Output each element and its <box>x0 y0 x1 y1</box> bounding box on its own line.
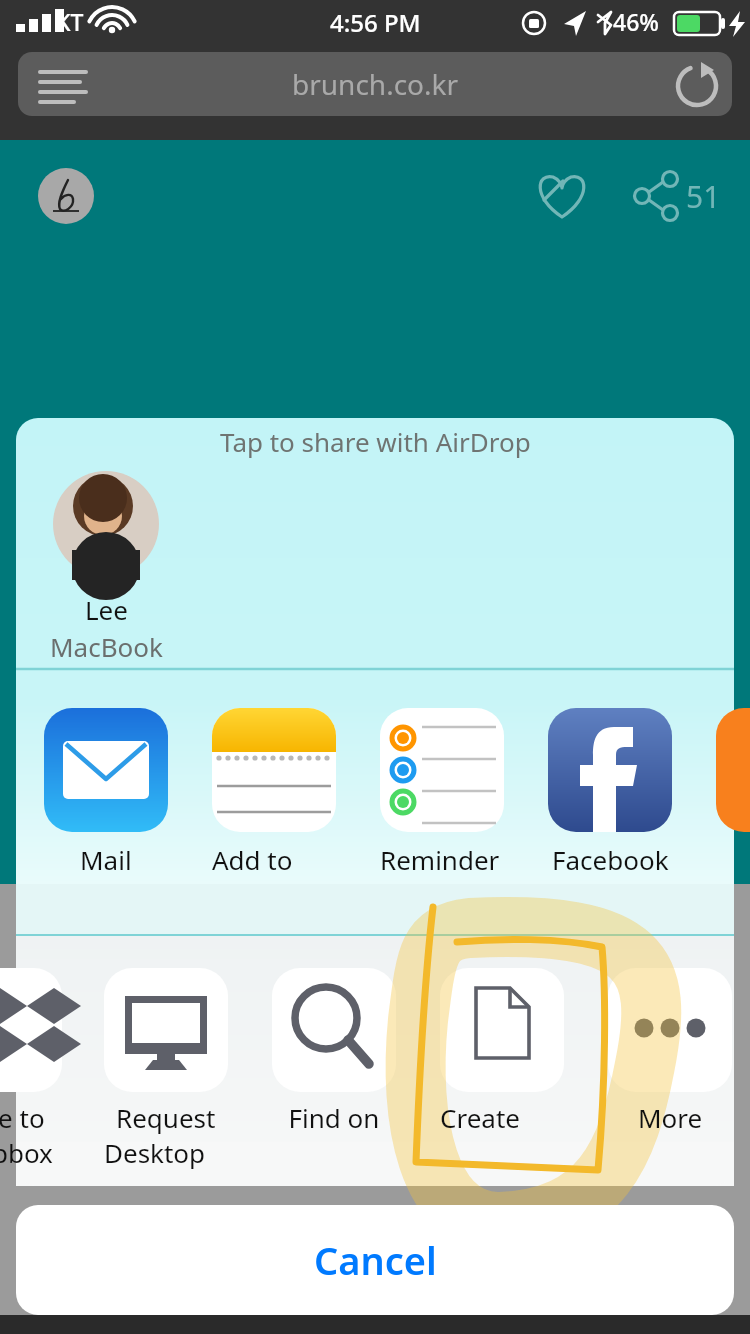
staticText: MacBook <box>50 629 163 664</box>
button[interactable]: S <box>716 708 750 878</box>
button[interactable]: Address bar brunch.co.kr <box>18 52 732 116</box>
button[interactable]: More <box>608 968 732 1168</box>
staticText: Desktop Site <box>104 1135 228 1170</box>
staticText: Cancel <box>314 1234 437 1286</box>
staticText: Create PDF <box>440 1100 564 1135</box>
button[interactable]: Author profile <box>38 168 94 224</box>
button[interactable]: Request <box>104 968 228 1168</box>
staticText: More <box>638 1100 703 1135</box>
button[interactable]: Add to Notes <box>212 708 336 878</box>
staticText: 51 <box>686 176 721 217</box>
button[interactable]: Save to <box>0 968 62 1168</box>
staticText: Save to <box>0 1100 45 1135</box>
staticText: 4:56 PM <box>330 6 421 39</box>
staticText: Lee <box>85 592 128 627</box>
button[interactable]: Share, 51 <box>624 166 721 226</box>
button[interactable]: Mail <box>44 708 168 878</box>
staticText: Find on Page <box>272 1100 396 1135</box>
staticText: KT <box>56 6 84 37</box>
staticText: 46% <box>613 6 659 37</box>
staticText: brunch.co.kr <box>292 65 459 103</box>
staticText: Add to Notes <box>212 842 336 877</box>
button[interactable]: Find on Page <box>272 968 396 1168</box>
button[interactable]: Lee <box>44 466 168 664</box>
button[interactable]: Cancel <box>16 1205 734 1315</box>
staticText: Facebook <box>552 842 669 877</box>
staticText: Tap to share with AirDrop <box>220 424 531 459</box>
button[interactable]: Reminders <box>380 708 504 878</box>
staticText: Reminders <box>380 842 504 877</box>
button[interactable]: Facebook <box>548 708 672 878</box>
staticText: Mail <box>80 842 132 877</box>
button[interactable]: Create PDF <box>440 968 564 1168</box>
staticText: Request <box>116 1100 216 1135</box>
button[interactable]: Like <box>530 166 594 226</box>
staticText: Dropbox <box>0 1135 53 1170</box>
